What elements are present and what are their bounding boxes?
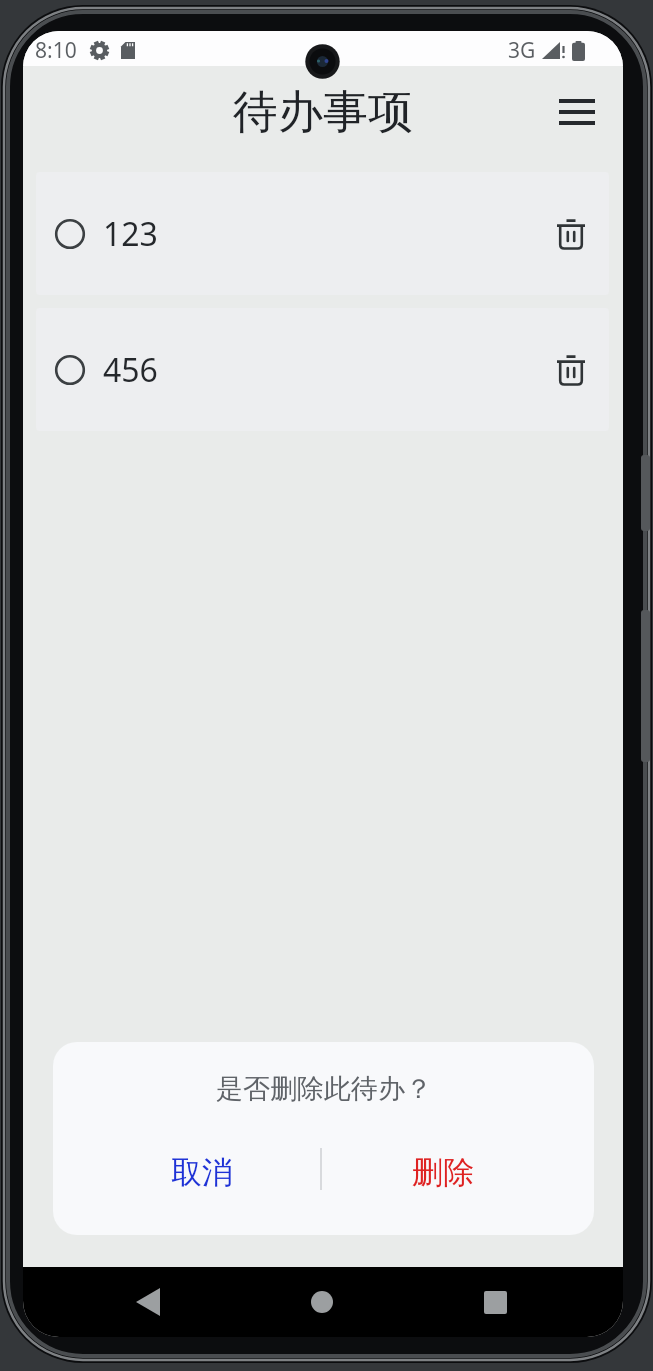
button[interactable]: 123: [36, 172, 609, 295]
staticText: 456: [103, 348, 158, 392]
staticText: 取消: [171, 1153, 233, 1192]
staticText: 123: [103, 212, 158, 256]
button[interactable]: [122, 1275, 174, 1329]
button[interactable]: [296, 1275, 348, 1329]
button[interactable]: [543, 206, 599, 262]
staticText: 3G: [508, 36, 536, 65]
staticText: 待办事项: [233, 84, 413, 141]
button[interactable]: 取消: [122, 1137, 282, 1207]
staticText: 是否删除此待办？: [216, 1072, 432, 1106]
button[interactable]: [543, 342, 599, 398]
button[interactable]: [544, 86, 610, 138]
staticText: 删除: [412, 1153, 474, 1192]
button[interactable]: 456: [36, 308, 609, 431]
staticText: 8:10: [35, 36, 77, 65]
button[interactable]: 删除: [363, 1137, 523, 1207]
button[interactable]: [469, 1275, 521, 1329]
